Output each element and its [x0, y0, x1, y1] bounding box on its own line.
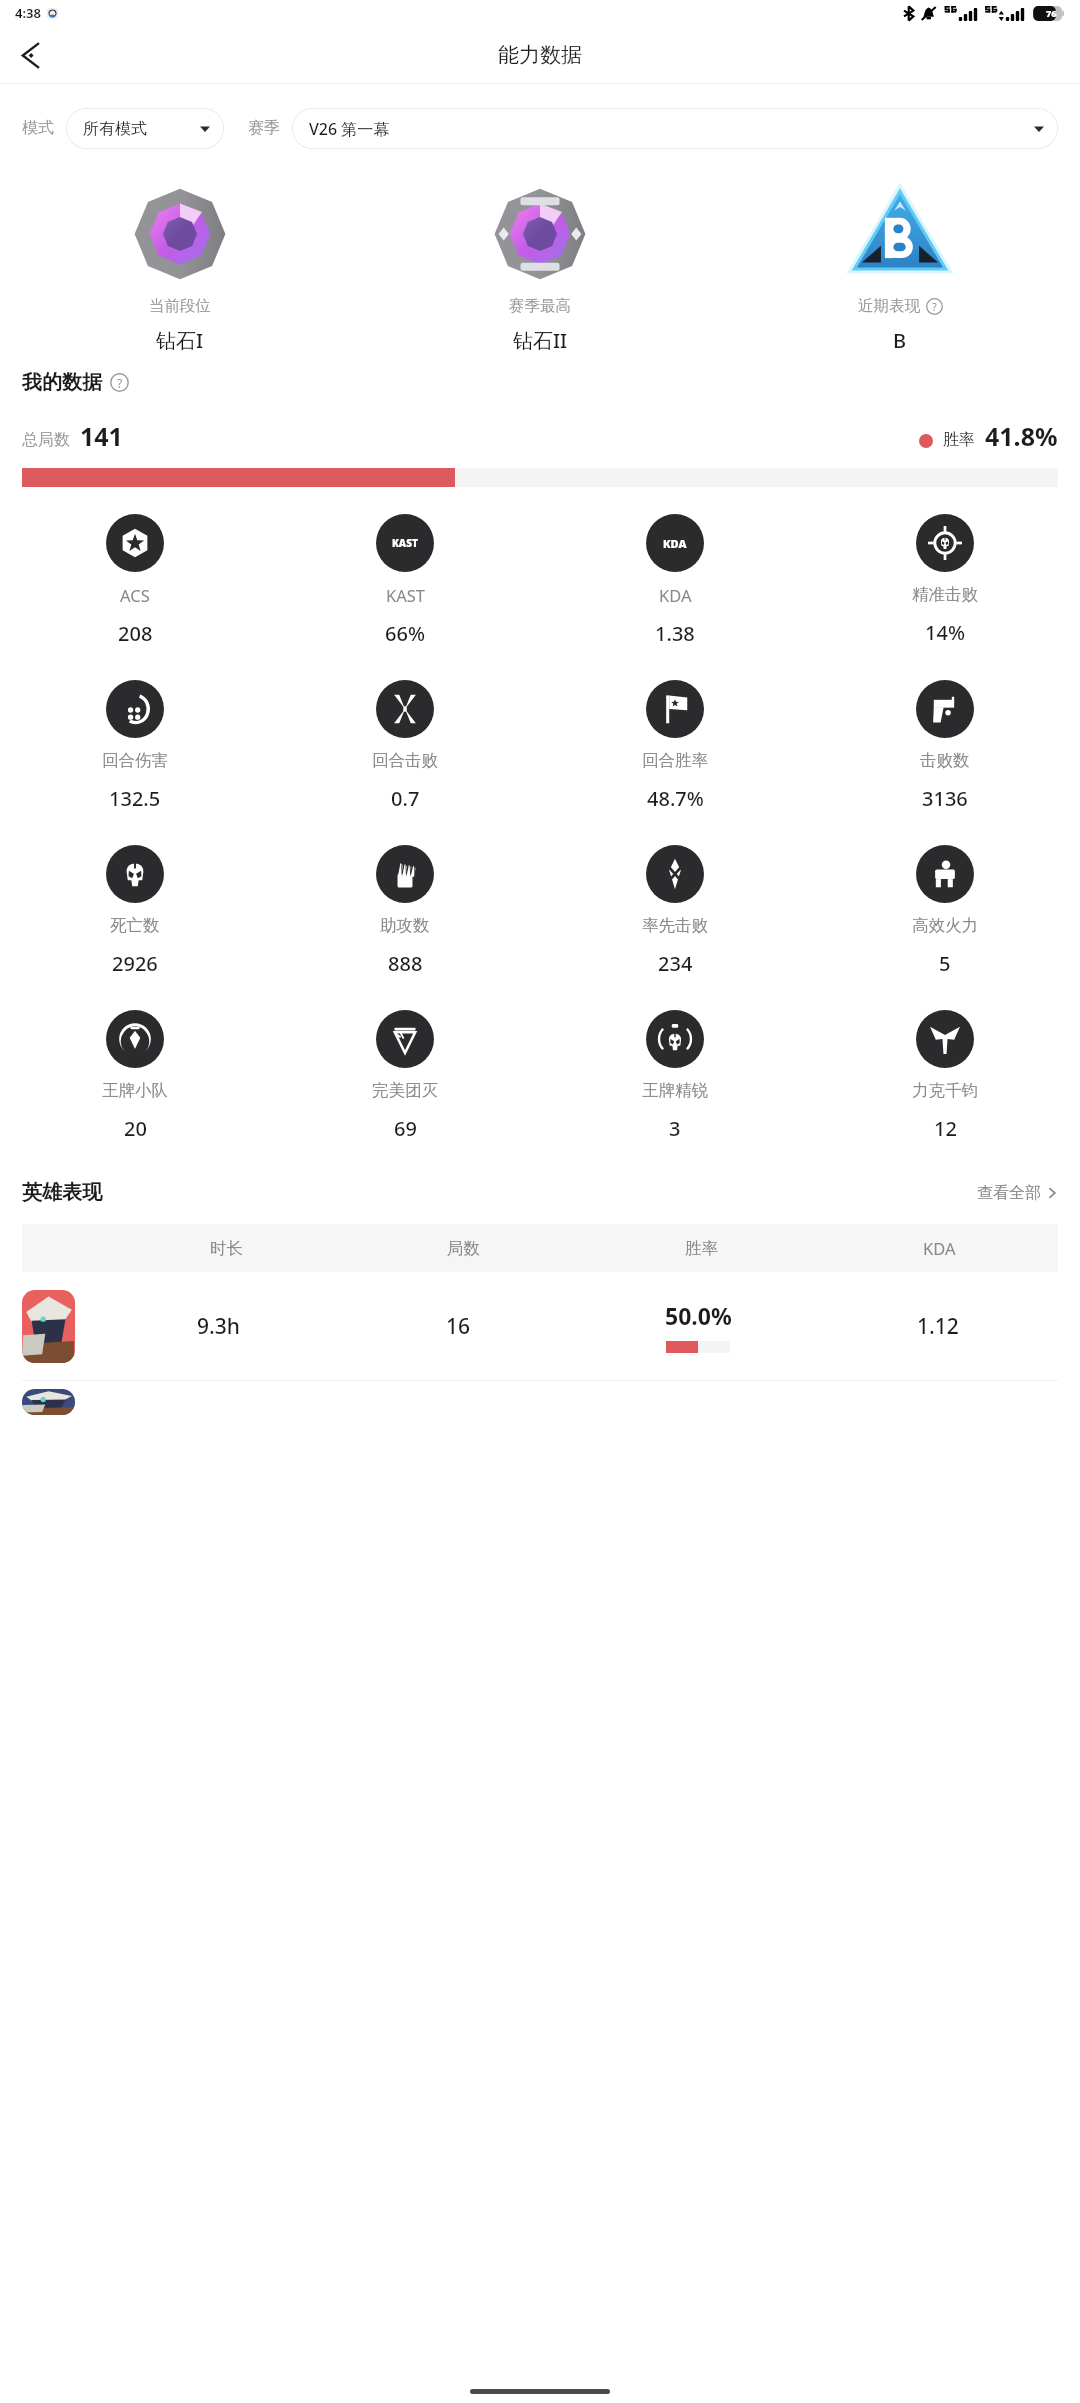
- staticText: 76: [1046, 7, 1057, 19]
- button[interactable]: 近期表现: [720, 178, 1080, 354]
- button[interactable]: 回合伤害: [0, 680, 270, 812]
- button[interactable]: 回合胜率: [540, 680, 810, 812]
- staticText: 局数: [447, 1238, 480, 1259]
- staticText: 胜率: [943, 430, 975, 450]
- button[interactable]: 9.3h: [22, 1272, 1058, 1380]
- staticText: 50.0%: [665, 1300, 732, 1331]
- button[interactable]: 英雄表现: [22, 1180, 1058, 1205]
- button[interactable]: Back: [8, 31, 56, 79]
- button[interactable]: 率先击败: [540, 845, 810, 977]
- staticText: 回合伤害: [102, 750, 168, 771]
- staticText: 0.7: [391, 785, 420, 812]
- staticText: 208: [118, 620, 153, 647]
- staticText: 回合击败: [372, 750, 438, 771]
- staticText: V26 第一幕: [309, 118, 390, 140]
- staticText: B: [893, 327, 907, 354]
- staticText: 总局数: [22, 430, 70, 450]
- button[interactable]: 赛季最高: [360, 178, 720, 354]
- staticText: 王牌小队: [102, 1080, 168, 1101]
- staticText: ?: [117, 375, 123, 391]
- button[interactable]: 当前段位: [0, 178, 360, 354]
- button[interactable]: ACS: [0, 514, 270, 647]
- staticText: 4:38: [15, 4, 41, 22]
- button[interactable]: 回合击败: [270, 680, 540, 812]
- button[interactable]: V26 第一幕: [292, 108, 1058, 149]
- staticText: 1.38: [655, 620, 695, 647]
- staticText: 48.7%: [647, 785, 704, 812]
- staticText: ACS: [120, 584, 150, 606]
- staticText: 234: [658, 950, 693, 977]
- staticText: 1.12: [917, 1312, 959, 1341]
- staticText: 力克千钧: [912, 1080, 978, 1101]
- button[interactable]: 王牌精锐: [540, 1010, 810, 1142]
- button[interactable]: 死亡数: [0, 845, 270, 977]
- staticText: 66%: [385, 620, 425, 647]
- staticText: 132.5: [109, 785, 161, 812]
- staticText: 3: [669, 1115, 681, 1142]
- staticText: 888: [388, 950, 423, 977]
- staticText: 14%: [925, 619, 965, 646]
- staticText: 能力数据: [498, 42, 582, 68]
- button[interactable]: KDA: [540, 514, 810, 647]
- staticText: 赛季最高: [509, 296, 571, 316]
- staticText: 69: [394, 1115, 417, 1142]
- staticText: 率先击败: [642, 915, 708, 936]
- staticText: 钻石I: [156, 327, 204, 354]
- staticText: 我的数据: [22, 370, 102, 395]
- staticText: 所有模式: [83, 119, 147, 139]
- staticText: 死亡数: [110, 915, 160, 936]
- staticText: 近期表现: [858, 296, 920, 316]
- button[interactable]: 击败数: [810, 680, 1080, 812]
- staticText: 模式: [22, 118, 54, 138]
- staticText: 助攻数: [380, 915, 430, 936]
- staticText: 回合胜率: [642, 750, 708, 771]
- staticText: 20: [124, 1115, 147, 1142]
- staticText: 钻石II: [513, 327, 568, 354]
- button[interactable]: 助攻数: [270, 845, 540, 977]
- staticText: 12: [934, 1115, 957, 1142]
- button[interactable]: 精准击败: [810, 514, 1080, 646]
- button[interactable]: 完美团灭: [270, 1010, 540, 1142]
- staticText: KDA: [663, 536, 687, 551]
- staticText: KAST: [392, 536, 418, 550]
- staticText: 赛季: [248, 118, 280, 138]
- staticText: 41.8%: [985, 419, 1058, 453]
- button[interactable]: 高效火力: [810, 845, 1080, 977]
- staticText: 16: [446, 1312, 471, 1341]
- button[interactable]: [22, 1381, 1058, 1415]
- staticText: KDA: [659, 584, 692, 606]
- button[interactable]: 力克千钧: [810, 1010, 1080, 1142]
- staticText: 胜率: [685, 1238, 718, 1259]
- staticText: 高效火力: [912, 915, 978, 936]
- button[interactable]: KAST: [270, 514, 540, 647]
- staticText: KAST: [386, 584, 425, 606]
- staticText: 精准击败: [912, 584, 978, 605]
- staticText: 王牌精锐: [642, 1080, 708, 1101]
- staticText: 2926: [112, 950, 158, 977]
- staticText: 完美团灭: [372, 1080, 438, 1101]
- staticText: 3136: [922, 785, 968, 812]
- staticText: 时长: [210, 1238, 243, 1259]
- button[interactable]: 王牌小队: [0, 1010, 270, 1142]
- staticText: 英雄表现: [22, 1180, 102, 1205]
- button[interactable]: Help: [110, 373, 129, 392]
- staticText: 查看全部: [977, 1183, 1041, 1203]
- staticText: 141: [80, 419, 123, 453]
- staticText: KDA: [923, 1237, 956, 1259]
- staticText: ?: [932, 299, 937, 314]
- staticText: 9.3h: [197, 1312, 240, 1341]
- staticText: 击败数: [920, 750, 970, 771]
- staticText: 5: [939, 950, 951, 977]
- button[interactable]: 所有模式: [66, 108, 224, 149]
- staticText: 当前段位: [149, 296, 211, 316]
